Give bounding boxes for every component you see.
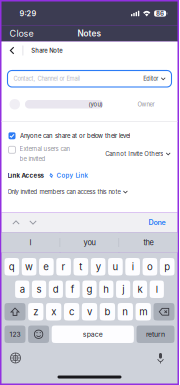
- button[interactable]: g: [82, 280, 97, 298]
- staticText: Done: [148, 218, 165, 227]
- button[interactable]: Next field: [24, 212, 41, 232]
- button[interactable]: p: [160, 258, 174, 275]
- button[interactable]: 123: [4, 325, 25, 343]
- staticText: u: [112, 261, 118, 272]
- button[interactable]: q: [4, 258, 19, 275]
- staticText: 123: [9, 330, 20, 338]
- button[interactable]: a: [15, 280, 29, 298]
- button[interactable]: t: [73, 258, 88, 275]
- staticText: l: [156, 284, 158, 295]
- button[interactable]: f: [66, 280, 80, 298]
- button[interactable]: Switch keyboard: [4, 350, 26, 366]
- staticText: t: [79, 261, 82, 272]
- staticText: return: [146, 330, 165, 338]
- button[interactable]: Anyone can share at or below their level: [1, 131, 177, 140]
- button[interactable]: n: [118, 303, 133, 320]
- staticText: x: [51, 306, 56, 317]
- button[interactable]: w: [22, 258, 36, 275]
- staticText: k: [137, 284, 142, 295]
- staticText: h: [103, 284, 109, 295]
- button[interactable]: o: [143, 258, 157, 275]
- staticText: Notes: [77, 29, 101, 38]
- staticText: Owner: [137, 101, 154, 108]
- button[interactable]: I: [1, 232, 60, 252]
- staticText: v: [87, 306, 92, 317]
- button[interactable]: Delete: [153, 303, 174, 320]
- button[interactable]: return: [136, 325, 174, 343]
- button[interactable]: Editor: [143, 72, 165, 85]
- staticText: w: [25, 261, 33, 272]
- staticText: o: [147, 261, 153, 272]
- staticText: space: [83, 330, 103, 338]
- staticText: p: [164, 261, 170, 272]
- button[interactable]: space: [52, 325, 134, 343]
- staticText: the: [143, 238, 153, 247]
- button[interactable]: l: [150, 280, 164, 298]
- button[interactable]: Copy Link: [43, 170, 93, 181]
- button[interactable]: Close: [1, 25, 41, 42]
- staticText: Anyone can share at or below their level: [20, 132, 130, 139]
- staticText: i: [132, 261, 134, 272]
- button[interactable]: d: [49, 280, 63, 298]
- button[interactable]: Only invited members can access this not…: [1, 187, 177, 196]
- button[interactable]: y: [91, 258, 105, 275]
- button[interactable]: Back: [1, 41, 22, 59]
- staticText: s: [36, 284, 41, 295]
- button[interactable]: Dictate: [149, 350, 171, 366]
- staticText: Share Note: [31, 47, 62, 54]
- staticText: q: [9, 261, 15, 272]
- staticText: m: [139, 306, 147, 317]
- staticText: Close: [9, 28, 33, 39]
- button[interactable]: u: [108, 258, 123, 275]
- button[interactable]: b: [100, 303, 115, 320]
- staticText: External users can: [19, 145, 70, 152]
- staticText: 86: [156, 10, 164, 17]
- staticText: be invited: [19, 155, 45, 162]
- staticText: c: [69, 306, 74, 317]
- button[interactable]: you: [60, 232, 119, 252]
- button[interactable]: j: [116, 280, 130, 298]
- staticText: Only invited members can access this not…: [7, 188, 120, 195]
- staticText: (you): [88, 101, 102, 108]
- staticText: r: [62, 261, 66, 272]
- staticText: I: [30, 238, 32, 247]
- button[interactable]: External users can: [8, 145, 70, 162]
- button[interactable]: x: [46, 303, 61, 320]
- button[interactable]: h: [99, 280, 113, 298]
- button[interactable]: v: [82, 303, 97, 320]
- button[interactable]: s: [32, 280, 46, 298]
- button[interactable]: i: [125, 258, 140, 275]
- button[interactable]: Previous field: [7, 212, 24, 232]
- button[interactable]: Shift: [4, 303, 25, 320]
- staticText: n: [122, 306, 128, 317]
- staticText: 9:29: [19, 9, 36, 18]
- button[interactable]: Emoji: [28, 325, 49, 343]
- staticText: Editor: [143, 75, 158, 82]
- staticText: j: [122, 284, 124, 295]
- button[interactable]: k: [133, 280, 147, 298]
- staticText: b: [104, 306, 110, 317]
- staticText: Link Access: [7, 172, 43, 179]
- button[interactable]: Cannot Invite Others: [105, 148, 170, 159]
- button[interactable]: r: [56, 258, 71, 275]
- button[interactable]: m: [136, 303, 151, 320]
- button[interactable]: c: [64, 303, 79, 320]
- button[interactable]: z: [28, 303, 43, 320]
- staticText: a: [20, 284, 25, 295]
- staticText: Contact, Channel or Email: [13, 75, 79, 82]
- staticText: Cannot Invite Others: [105, 150, 163, 157]
- staticText: y: [96, 261, 101, 272]
- button[interactable]: e: [39, 258, 54, 275]
- staticText: f: [71, 284, 75, 295]
- staticText: e: [43, 261, 49, 272]
- staticText: g: [86, 284, 92, 295]
- staticText: z: [33, 306, 38, 317]
- staticText: Copy Link: [57, 172, 88, 179]
- button[interactable]: Done: [142, 214, 171, 231]
- staticText: you: [83, 238, 95, 247]
- staticText: d: [53, 284, 59, 295]
- button[interactable]: the: [119, 232, 177, 252]
